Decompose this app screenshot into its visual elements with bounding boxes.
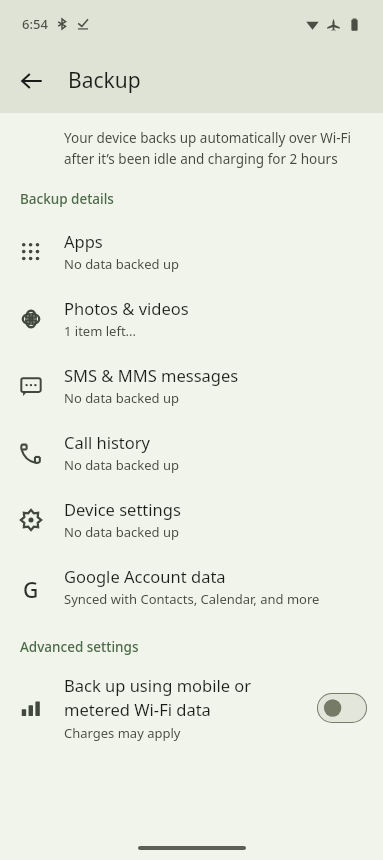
staticText: Google Account data: [64, 565, 226, 587]
staticText: Backup details: [20, 190, 114, 208]
button[interactable]: Back: [8, 57, 56, 105]
staticText: Charges may apply: [64, 724, 181, 742]
button[interactable]: Call history: [0, 419, 383, 486]
staticText: Backup: [68, 66, 141, 95]
button[interactable]: Back up using mobile or metered Wi-Fi da…: [0, 664, 383, 752]
staticText: 6:54: [22, 15, 48, 33]
button[interactable]: G: [0, 553, 383, 620]
staticText: G: [23, 576, 39, 598]
staticText: Photos & videos: [64, 297, 189, 319]
button[interactable]: Photos & videos: [0, 285, 383, 352]
staticText: Your device backs up automatically over …: [64, 129, 359, 168]
button[interactable]: Back up using mobile data toggle: [317, 693, 367, 723]
staticText: No data backed up: [64, 255, 179, 273]
staticText: 1 item left...: [64, 322, 137, 340]
staticText: Call history: [64, 431, 151, 453]
button[interactable]: SMS & MMS messages: [0, 352, 383, 419]
staticText: Device settings: [64, 498, 181, 520]
button[interactable]: Apps: [0, 218, 383, 285]
staticText: Back up using mobile or metered Wi-Fi da…: [64, 674, 305, 721]
staticText: No data backed up: [64, 389, 179, 407]
staticText: SMS & MMS messages: [64, 364, 239, 386]
staticText: No data backed up: [64, 456, 179, 474]
staticText: Synced with Contacts, Calendar, and more: [64, 590, 320, 608]
staticText: Apps: [64, 230, 103, 252]
button[interactable]: Device settings: [0, 486, 383, 553]
staticText: Advanced settings: [20, 638, 139, 656]
staticText: No data backed up: [64, 523, 179, 541]
